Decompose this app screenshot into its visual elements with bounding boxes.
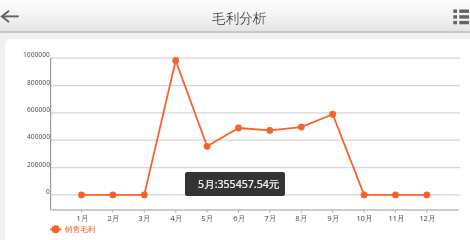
staticText: 5月 bbox=[201, 213, 214, 224]
staticText: 800000 bbox=[27, 78, 50, 87]
staticText: 400000 bbox=[27, 132, 50, 141]
staticText: 4月 bbox=[170, 213, 183, 224]
staticText: 9月 bbox=[327, 213, 340, 224]
staticText: 2月 bbox=[107, 213, 120, 224]
button[interactable]: 5月:355457.54元 bbox=[185, 172, 285, 196]
staticText: 0 bbox=[46, 187, 50, 196]
button[interactable]: 毛利分析 bbox=[212, 10, 267, 27]
button[interactable]: List menu bbox=[446, 2, 470, 32]
button[interactable]: 销售毛利 bbox=[48, 222, 79, 237]
button[interactable]: Back bbox=[0, 0, 34, 33]
staticText: 11月 bbox=[388, 213, 405, 224]
staticText: 销售毛利 bbox=[65, 225, 96, 235]
staticText: 10月 bbox=[356, 213, 373, 224]
staticText: 200000 bbox=[27, 160, 50, 169]
staticText: 7月 bbox=[264, 213, 277, 224]
staticText: 3月 bbox=[138, 213, 151, 224]
staticText: 5月:355457.54元 bbox=[198, 177, 280, 191]
staticText: 600000 bbox=[27, 105, 50, 114]
staticText: 6月 bbox=[233, 213, 246, 224]
staticText: 8月 bbox=[295, 213, 308, 224]
staticText: 1月 bbox=[76, 213, 89, 224]
staticText: 1000000 bbox=[23, 50, 50, 59]
staticText: 12月 bbox=[419, 213, 436, 224]
